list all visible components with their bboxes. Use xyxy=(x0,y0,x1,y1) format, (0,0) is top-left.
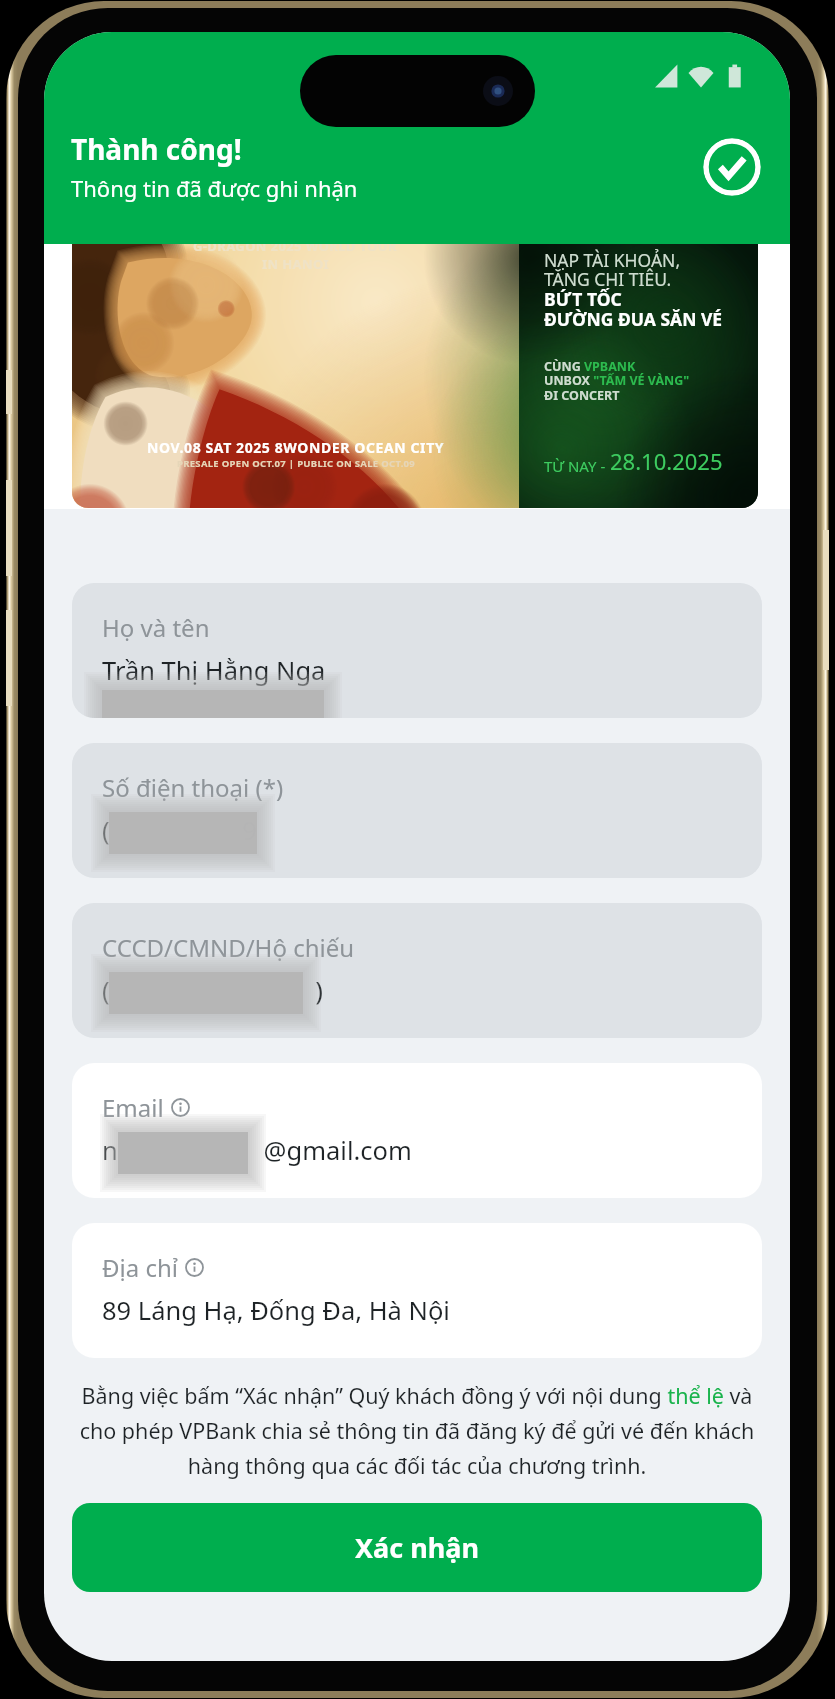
button[interactable]: Xác nhận xyxy=(72,1503,762,1592)
staticText: Địa chỉ xyxy=(102,1251,178,1284)
button[interactable]: Địa chỉ xyxy=(72,1223,762,1358)
staticText: ( ) xyxy=(102,973,323,1008)
staticText: ( 9 xyxy=(102,813,257,848)
staticText: G-DRAGON 2025 WORLD TOUR xyxy=(193,244,398,255)
staticText: CCCD/CMND/Hộ chiếu xyxy=(102,931,355,964)
button[interactable]: G-DRAGON 2025 WORLD TOUR xyxy=(72,244,758,508)
staticText: Bằng việc bấm “Xác nhận” Quý khách đồng … xyxy=(48,1381,786,1481)
staticText: NẠP TÀI KHOẢN, TĂNG CHI TIÊU. BỨT TỐC ĐƯ… xyxy=(544,248,723,331)
staticText: Trần Thị Hằng Nga xyxy=(102,653,326,688)
staticText: 89 Láng Hạ, Đống Đa, Hà Nội xyxy=(102,1293,450,1328)
button[interactable]: Email xyxy=(72,1063,762,1198)
button[interactable]: Success xyxy=(703,138,761,196)
button[interactable]: Số điện thoại (*) xyxy=(72,743,762,878)
staticText: IN HANOI xyxy=(262,255,330,273)
staticText: TỪ NAY - xyxy=(544,456,610,476)
staticText: CÙNG VPBANK UNBOX "TẤM VÉ VÀNG" ĐI CONCE… xyxy=(544,358,690,404)
staticText: Thông tin đã được ghi nhận xyxy=(71,173,358,203)
staticText: n @gmail.com xyxy=(102,1133,412,1168)
button[interactable]: CCCD/CMND/Hộ chiếu xyxy=(72,903,762,1038)
staticText: Xác nhận xyxy=(355,1529,480,1566)
staticText: NOV.08 SAT 2025 8WONDER OCEAN CITY xyxy=(147,438,445,457)
staticText: PRESALE OPEN OCT.07 | PUBLIC ON SALE OCT… xyxy=(177,457,416,470)
staticText: Số điện thoại (*) xyxy=(102,771,284,804)
staticText: Email xyxy=(102,1091,164,1124)
staticText: Thành công! xyxy=(71,130,242,168)
staticText: Họ và tên xyxy=(102,611,210,644)
staticText: 28.10.2025 xyxy=(610,446,723,476)
button[interactable]: Họ và tên xyxy=(72,583,762,718)
